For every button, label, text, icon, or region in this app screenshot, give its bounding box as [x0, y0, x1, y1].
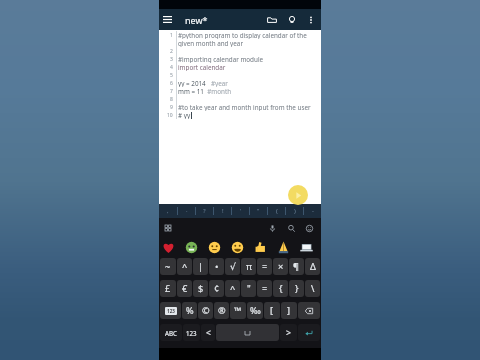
staticText: 1 [170, 32, 173, 39]
button[interactable]: Enter [298, 324, 320, 341]
button[interactable]: Keyboard toolbox [162, 222, 174, 234]
staticText: , [167, 207, 169, 215]
button[interactable]: More options [302, 9, 319, 30]
button[interactable]: √ [225, 258, 240, 275]
button[interactable]: Voice input [265, 221, 279, 235]
button[interactable]: £ [160, 280, 176, 297]
staticText: 2 [170, 48, 173, 55]
staticText: #to take year and month input from the u… [178, 103, 311, 111]
staticText: | [198, 260, 204, 273]
button[interactable]: { [273, 280, 288, 297]
button[interactable]: } [289, 280, 304, 297]
staticText: π [246, 260, 252, 273]
button[interactable]: ' [232, 204, 249, 218]
button[interactable]: " [241, 280, 256, 297]
button[interactable]: Search [284, 221, 298, 235]
button[interactable]: Emoji [226, 238, 249, 257]
button[interactable]: ^ [225, 280, 240, 297]
button[interactable]: \ [305, 280, 320, 297]
button[interactable]: , [159, 204, 177, 218]
button[interactable]: Emoji [156, 238, 180, 257]
button[interactable]: Space [216, 324, 279, 341]
button[interactable]: ¶ [289, 258, 304, 275]
staticText: × [278, 260, 284, 273]
staticText: #importing calendar module [178, 55, 264, 63]
button[interactable]: ~ [160, 258, 176, 275]
button[interactable]: 123 [183, 324, 200, 341]
button[interactable]: > [280, 324, 297, 341]
button[interactable]: ? [196, 204, 213, 218]
button[interactable]: Navigation menu [159, 9, 176, 30]
staticText: © [202, 304, 210, 317]
button[interactable]: ‰ [247, 302, 263, 319]
button[interactable]: × [273, 258, 288, 275]
button[interactable]: < [201, 324, 215, 341]
button[interactable]: - [304, 204, 321, 218]
staticText: # yy [178, 111, 191, 119]
button[interactable]: ( [268, 204, 285, 218]
staticText: < [206, 327, 211, 339]
button[interactable]: % [182, 302, 197, 319]
staticText: { [279, 282, 283, 295]
button[interactable]: Run [288, 185, 308, 205]
button[interactable]: $ [193, 280, 208, 297]
staticText: € [182, 282, 188, 295]
button[interactable]: π [241, 258, 256, 275]
button[interactable]: ® [214, 302, 229, 319]
button[interactable]: Emoji [295, 238, 318, 257]
button[interactable]: Open file [262, 9, 282, 30]
staticText: mm = 11 [178, 87, 204, 95]
button[interactable]: © [198, 302, 213, 319]
staticText: given month and year [178, 39, 243, 47]
button[interactable]: ^ [177, 258, 192, 275]
staticText: ^ [182, 260, 188, 273]
button[interactable]: • [209, 258, 224, 275]
staticText: ) [294, 207, 296, 215]
staticText: " [247, 282, 251, 295]
button[interactable]: ! [214, 204, 231, 218]
staticText: ™ [234, 304, 242, 317]
button[interactable]: ABC [160, 324, 182, 341]
button[interactable]: Backspace [298, 302, 320, 319]
button[interactable]: Δ [305, 258, 320, 275]
staticText: % [186, 304, 194, 317]
button[interactable]: ¢ [209, 280, 224, 297]
button[interactable]: = [257, 258, 272, 275]
staticText: √ [230, 261, 236, 272]
button[interactable]: Emoji [302, 221, 316, 235]
staticText: ] [287, 304, 291, 317]
button[interactable]: Emoji [272, 238, 295, 257]
button[interactable]: Hints [282, 9, 302, 30]
button[interactable]: Emoji [203, 238, 226, 257]
button[interactable]: [ [264, 302, 280, 319]
button[interactable]: ] [281, 302, 297, 319]
staticText: 5 [170, 72, 173, 79]
staticText: 8 [170, 96, 173, 103]
staticText: ABC [165, 329, 177, 337]
button[interactable]: = [257, 280, 272, 297]
button[interactable]: ) [286, 204, 303, 218]
button[interactable]: ™ [230, 302, 246, 319]
staticText: \ [311, 282, 315, 295]
staticText: $ [198, 282, 204, 295]
staticText: > [286, 327, 291, 339]
staticText: - [312, 207, 314, 215]
staticText: ® [218, 304, 226, 317]
staticText: } [295, 282, 299, 295]
button[interactable]: 123 [160, 302, 181, 319]
staticText: ‰ [250, 304, 261, 317]
staticText: • [215, 260, 219, 273]
staticText: #month [204, 87, 232, 95]
staticText: ¶ [293, 260, 300, 273]
button[interactable]: " [250, 204, 267, 218]
button[interactable]: Emoji [180, 238, 203, 257]
staticText: = [262, 282, 268, 295]
button[interactable]: Emoji [249, 238, 272, 257]
button[interactable]: € [177, 280, 192, 297]
staticText: 123 [186, 329, 197, 337]
staticText: yy = 2014 [178, 79, 206, 87]
button[interactable]: | [193, 258, 208, 275]
staticText: new* [185, 14, 208, 26]
staticText: 6 [170, 80, 173, 87]
